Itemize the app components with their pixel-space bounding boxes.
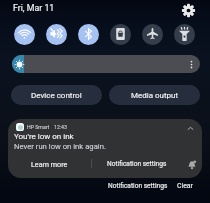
button[interactable]: HP Smart	[8, 119, 202, 178]
button[interactable]: Device control	[11, 85, 102, 105]
staticText: Notification settings	[107, 160, 167, 168]
button[interactable]: Silence notifications	[182, 154, 202, 173]
button[interactable]: Settings	[181, 3, 196, 18]
staticText: 12:43	[54, 124, 67, 130]
button[interactable]: Airplane mode	[142, 24, 163, 45]
button[interactable]: Learn more	[8, 154, 91, 173]
staticText: Never run low on ink again.	[14, 142, 106, 151]
button[interactable]: Expand	[184, 122, 196, 134]
staticText: Media output	[131, 91, 179, 100]
button[interactable]: Brightness	[12, 55, 200, 73]
button[interactable]: Clear	[174, 182, 196, 190]
button[interactable]: Flashlight	[174, 24, 195, 45]
button[interactable]: Mute	[46, 24, 67, 45]
button[interactable]: Bluetooth	[78, 24, 99, 45]
button[interactable]: Notification settings	[105, 182, 171, 190]
staticText: HP Smart	[27, 124, 50, 130]
staticText: Notification settings	[108, 182, 168, 190]
button[interactable]: Auto-rotate	[110, 24, 131, 45]
staticText: You're low on ink	[14, 132, 74, 141]
staticText: Fri, Mar 11	[13, 3, 55, 13]
staticText: Learn more	[31, 160, 68, 168]
button[interactable]: Media output	[109, 85, 200, 105]
button[interactable]: Wi-Fi	[14, 24, 35, 45]
button[interactable]: Notification settings	[92, 154, 182, 173]
staticText: Device control	[31, 91, 82, 100]
staticText: Clear	[177, 182, 193, 190]
